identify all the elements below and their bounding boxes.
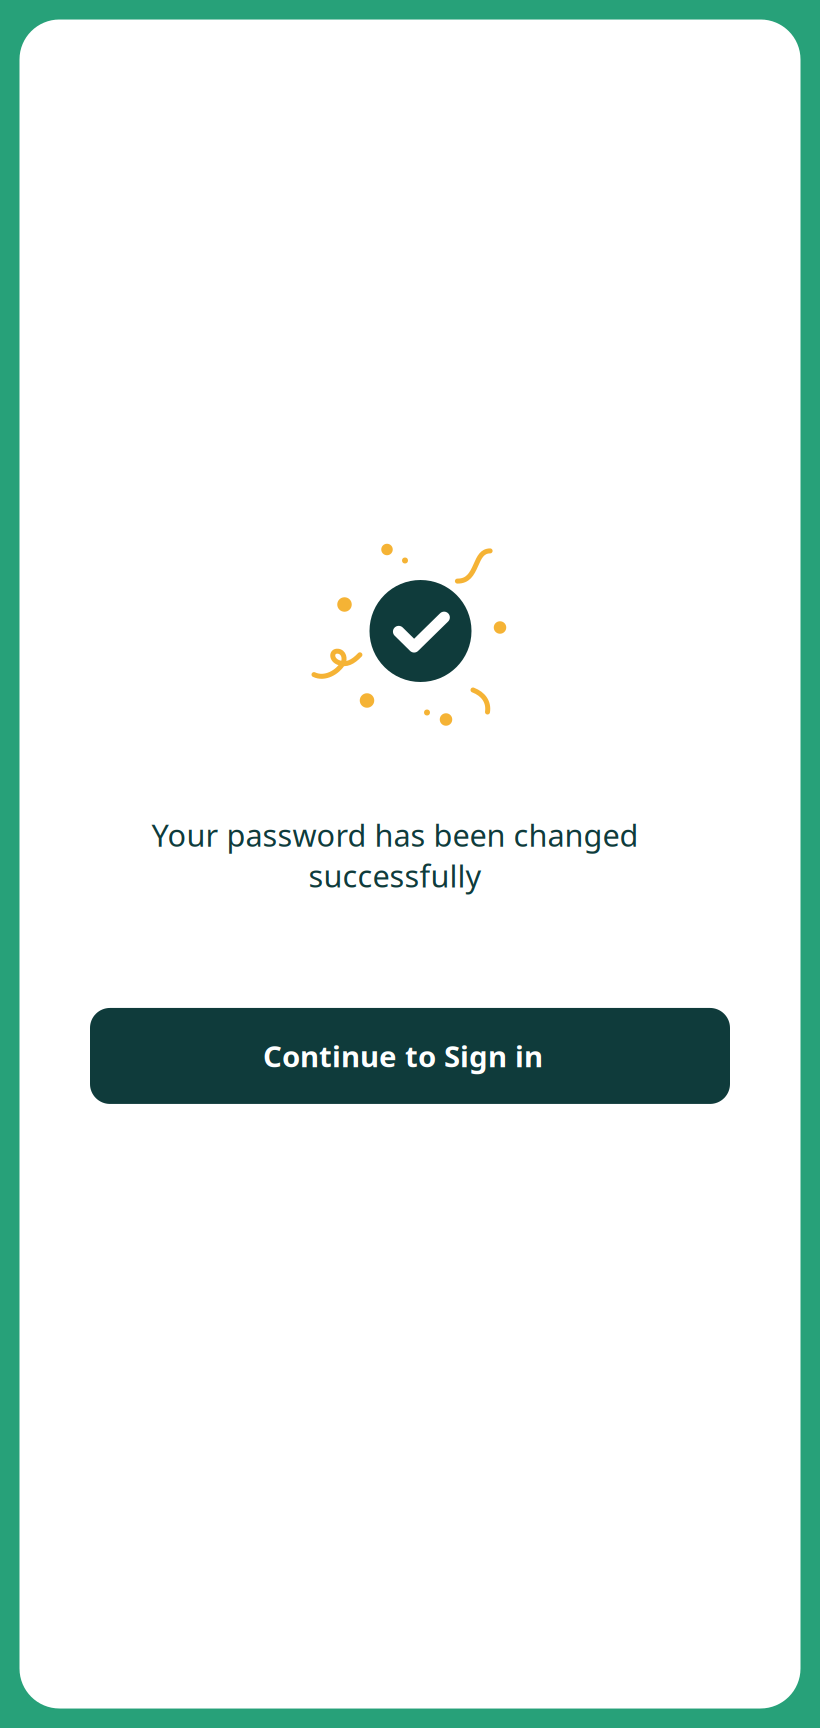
button[interactable]: Continue to Sign in [90,1008,730,1104]
staticText: successfully [308,855,481,896]
staticText: Continue to Sign in [263,1036,543,1075]
staticText: Your password has been changed [151,814,638,855]
